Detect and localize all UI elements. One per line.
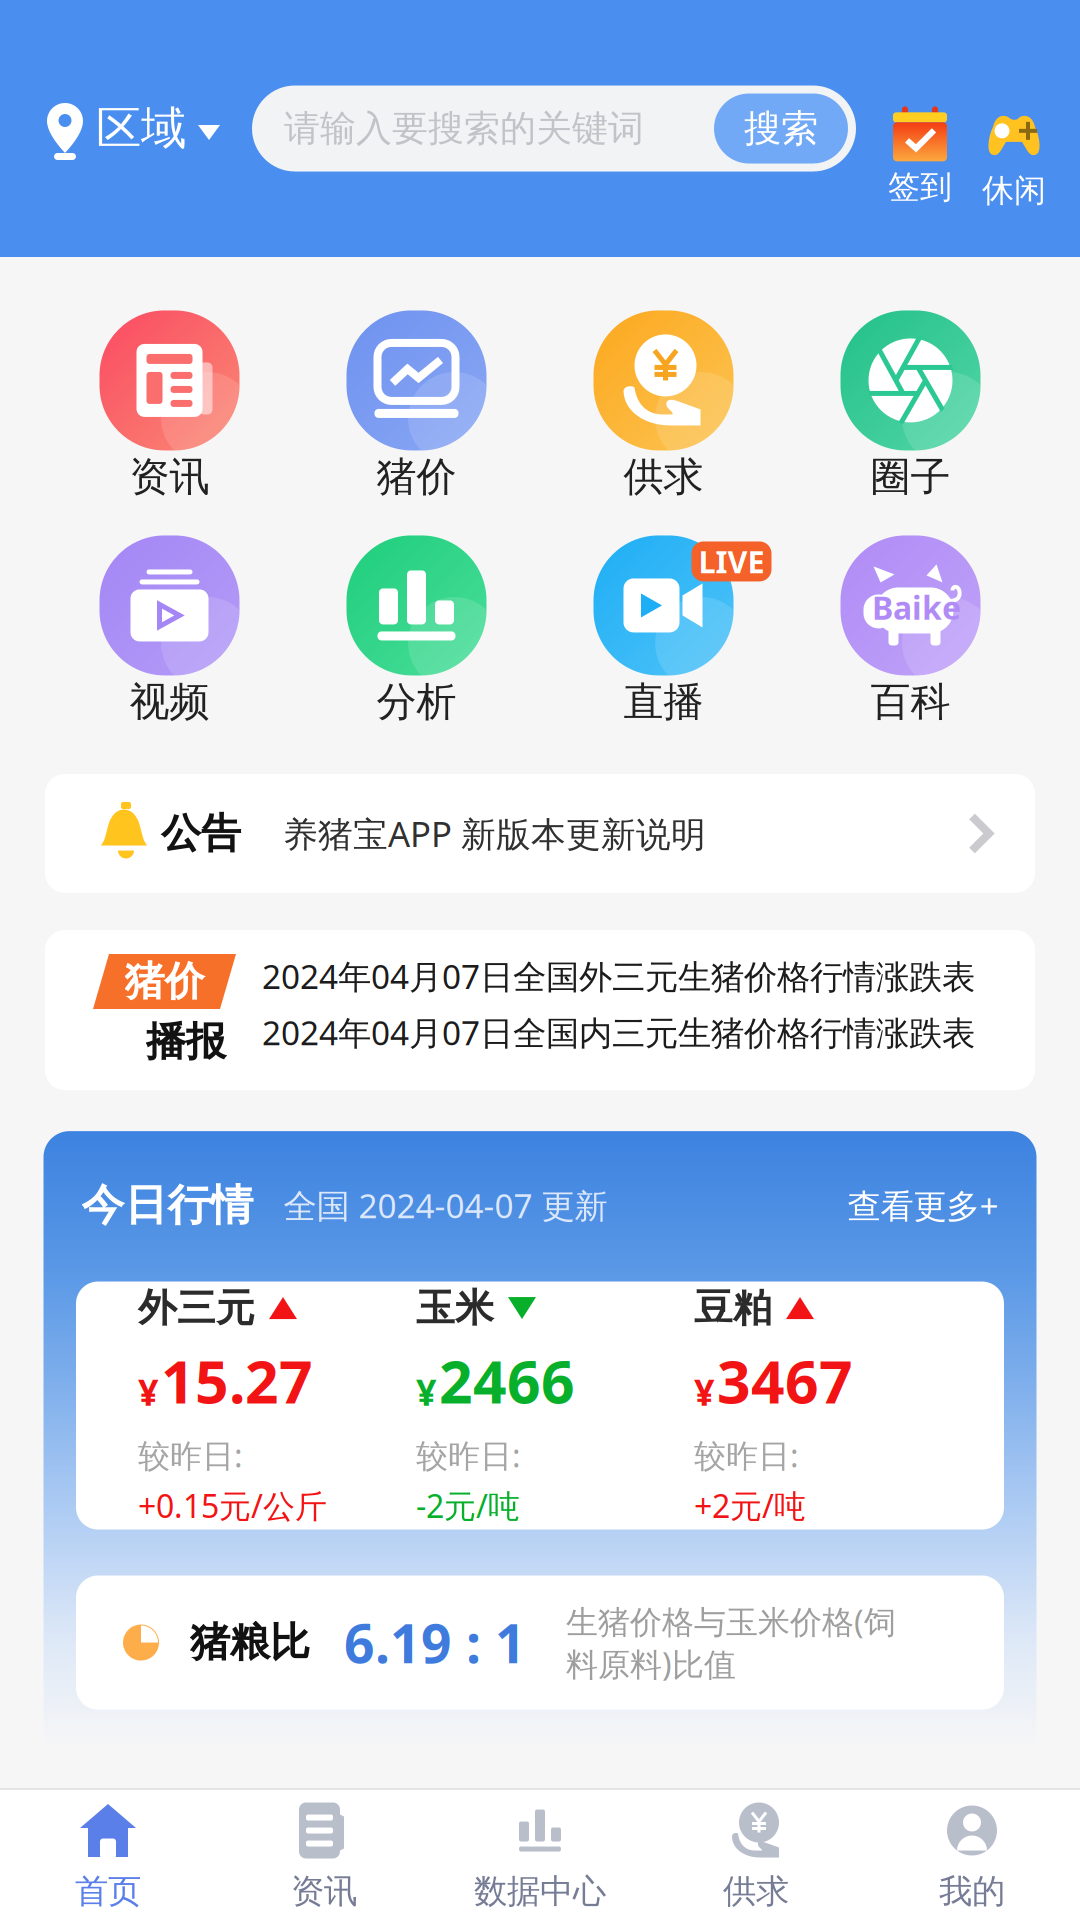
staticText: 直播 (623, 677, 703, 726)
staticText: ¥ (138, 1368, 159, 1416)
staticText: ¥ (694, 1368, 715, 1416)
staticText: 圈子 (870, 452, 950, 501)
staticText: 玉米 (416, 1284, 494, 1332)
staticText: 豆粕 (694, 1284, 772, 1332)
staticText: 请输入要搜索的关键词 (284, 106, 644, 151)
button[interactable]: 我的 (864, 1788, 1080, 1920)
staticText: 生猪价格与玉米价格(饲料原料)比值 (566, 1600, 896, 1685)
staticText: 6.19 : 1 (344, 1607, 526, 1678)
button[interactable]: 资讯 (46, 313, 293, 499)
button[interactable]: LIVE (540, 538, 787, 724)
button[interactable]: 休闲 (982, 75, 1046, 182)
staticText: 外三元 (138, 1284, 255, 1332)
staticText: 15.27 (161, 1342, 313, 1420)
staticText: 较昨日: (694, 1434, 799, 1476)
button[interactable]: 供求 (540, 313, 787, 499)
button[interactable]: 搜索 (714, 93, 848, 163)
button[interactable]: 分析 (293, 538, 540, 724)
staticText: 播报 (146, 1017, 226, 1066)
button[interactable]: 圈子 (787, 313, 1034, 499)
button[interactable]: 区域 (46, 95, 220, 161)
staticText: 猪价 (376, 452, 456, 501)
staticText: 全国 2024-04-07 更新 (283, 1183, 607, 1228)
button[interactable]: 签到 (888, 78, 952, 179)
staticText: 我的 (939, 1871, 1005, 1912)
staticText: 供求 (623, 452, 703, 501)
staticText: 供求 (723, 1871, 789, 1912)
staticText: 2024年04月07日全国内三元生猪价格行情涨跌表 (262, 1010, 975, 1055)
button[interactable]: 公告 (45, 774, 1035, 893)
staticText: 2024年04月07日全国外三元生猪价格行情涨跌表 (262, 954, 975, 998)
staticText: +2元/吨 (694, 1484, 806, 1527)
staticText: +0.15元/公斤 (138, 1484, 327, 1527)
staticText: 分析 (376, 677, 456, 726)
staticText: 较昨日: (138, 1434, 243, 1476)
button[interactable]: 猪价 (293, 313, 540, 499)
button[interactable]: Baike (787, 538, 1034, 724)
staticText: 首页 (75, 1871, 141, 1912)
button[interactable]: 查看更多+ (847, 1187, 998, 1232)
staticText: 资讯 (129, 452, 209, 501)
staticText: 休闲 (982, 171, 1046, 210)
button[interactable]: 资讯 (216, 1788, 432, 1920)
staticText: 百科 (870, 677, 950, 726)
button[interactable]: 视频 (46, 538, 293, 724)
staticText: 养猪宝APP 新版本更新说明 (283, 810, 706, 856)
button[interactable]: 首页 (0, 1788, 216, 1920)
staticText: 搜索 (744, 106, 818, 151)
button[interactable]: 2024年04月07日全国外三元生猪价格行情涨跌表 (262, 954, 975, 998)
staticText: 签到 (888, 167, 952, 207)
staticText: 公告 (161, 809, 241, 858)
button[interactable]: 2024年04月07日全国内三元生猪价格行情涨跌表 (262, 1010, 975, 1055)
staticText: 区域 (96, 101, 186, 156)
staticText: 今日行情 (81, 1179, 253, 1231)
button[interactable]: 供求 (648, 1788, 864, 1920)
staticText: 资讯 (291, 1871, 357, 1912)
staticText: 猪价 (124, 957, 204, 1006)
staticText: 查看更多+ (847, 1183, 998, 1228)
staticText: LIVE (698, 541, 764, 582)
staticText: ¥ (416, 1368, 437, 1416)
staticText: 2466 (439, 1342, 575, 1420)
button[interactable]: 数据中心 (432, 1788, 648, 1920)
staticText: 数据中心 (474, 1871, 606, 1912)
staticText: Baike (872, 586, 961, 629)
staticText: -2元/吨 (416, 1484, 520, 1527)
staticText: 3467 (717, 1342, 853, 1420)
staticText: 视频 (129, 677, 209, 726)
staticText: 较昨日: (416, 1434, 521, 1476)
staticText: 猪粮比 (190, 1618, 310, 1667)
